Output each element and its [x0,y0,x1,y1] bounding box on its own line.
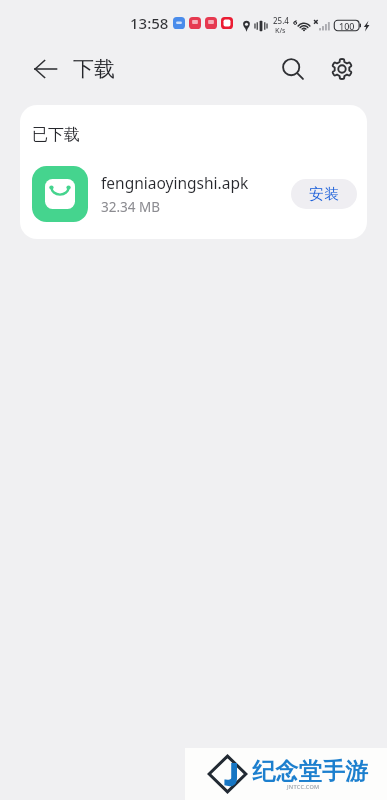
button[interactable]: fengniaoyingshi.apk [20,158,367,230]
staticText: 13:58 [130,13,169,33]
button[interactable]: Search [269,45,317,93]
staticText: fengniaoyingshi.apk [101,172,249,193]
button[interactable]: Back [21,45,69,93]
staticText: 32.34 MB [101,198,161,216]
staticText: JNTCC.COM [287,783,320,791]
staticText: 100 [339,20,355,32]
staticText: 下载 [73,56,115,82]
staticText: K/s [275,26,286,36]
staticText: 安装 [309,185,339,204]
button[interactable]: 安装 [291,179,357,209]
button[interactable]: Settings [318,45,366,93]
staticText: 已下载 [32,125,80,145]
staticText: 25.4 [273,15,289,26]
staticText: 纪念堂手游 [252,757,369,786]
